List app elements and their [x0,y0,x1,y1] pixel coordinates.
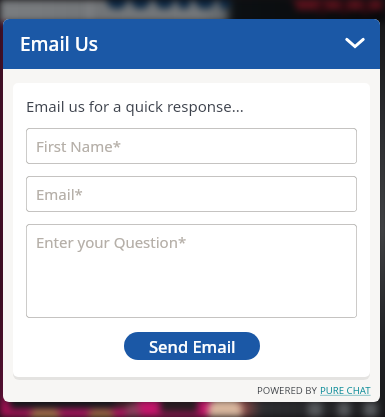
button[interactable]: Collapse chat window [340,29,370,59]
button[interactable]: Email* [26,176,357,212]
staticText: Email* [36,184,83,204]
staticText: POWERED BY [257,384,320,397]
staticText: Email us for a quick response... [26,96,244,116]
staticText: First Name* [36,136,121,156]
button[interactable]: First Name* [26,128,357,164]
button[interactable]: Email Us [3,19,380,69]
button[interactable]: Send Email [124,332,260,360]
staticText: Email Us [20,31,98,57]
button[interactable]: Enter your Question* [26,224,357,318]
staticText: Enter your Question* [36,232,187,252]
button[interactable]: PURE CHAT [320,384,371,397]
staticText: Send Email [149,335,236,357]
